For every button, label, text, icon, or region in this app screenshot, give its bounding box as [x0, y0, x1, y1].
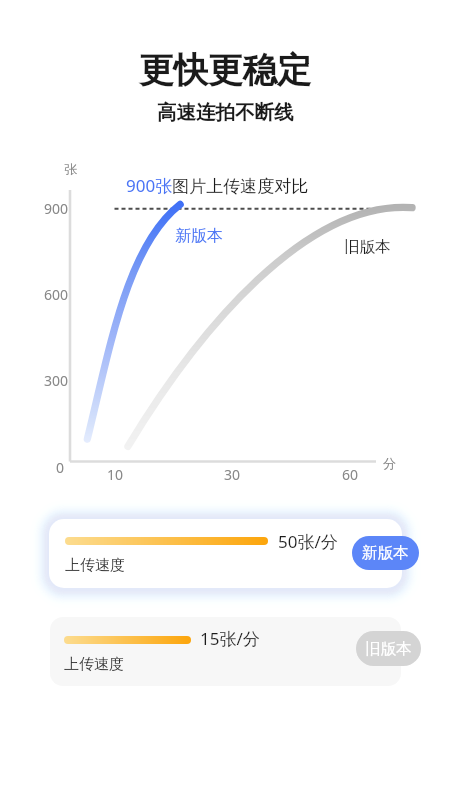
staticText: 900张图片上传速度对比 [126, 174, 309, 197]
staticText: 900 [44, 199, 69, 218]
staticText: 张 [64, 161, 77, 177]
staticText: 上传速度 [65, 556, 125, 575]
staticText: 分 [383, 455, 396, 471]
staticText: 旧版本 [365, 639, 412, 659]
staticText: 600 [44, 285, 69, 304]
staticText: 10 [107, 465, 124, 484]
staticText: 更快更稳定 [139, 49, 312, 92]
button[interactable]: 新版本 [352, 536, 419, 570]
staticText: 60 [342, 465, 359, 484]
button[interactable]: 50张/分 [49, 519, 402, 588]
staticText: 新版本 [362, 543, 409, 563]
staticText: 15张/分 [200, 627, 260, 650]
staticText: 高速连拍不断线 [157, 100, 294, 125]
staticText: 300 [44, 371, 69, 390]
staticText: 旧版本 [344, 237, 391, 257]
button[interactable]: 旧版本 [356, 631, 421, 666]
button[interactable]: 15张/分 [50, 617, 401, 686]
staticText: 新版本 [175, 226, 223, 246]
staticText: 30 [224, 465, 241, 484]
staticText: 50张/分 [278, 530, 338, 553]
staticText: 上传速度 [64, 655, 124, 674]
staticText: 0 [56, 458, 65, 477]
